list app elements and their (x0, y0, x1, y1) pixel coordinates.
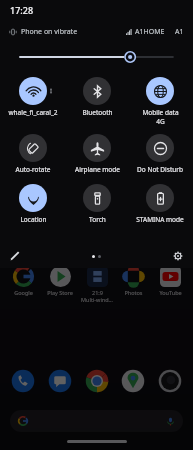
staticText: Torch (89, 215, 106, 224)
staticText: A1 (175, 27, 184, 37)
button[interactable]: Location (2, 183, 64, 225)
button[interactable]: Airplane mode (66, 133, 128, 175)
staticText: Location (20, 215, 47, 224)
staticText: Multi-wind… (81, 296, 113, 303)
staticText: whale_fi_caral_2 (8, 108, 58, 117)
button[interactable]: Camera (157, 368, 183, 394)
staticText: 21:9 (92, 289, 103, 296)
button[interactable]: Messages (47, 368, 73, 394)
staticText: 17:28 (10, 4, 34, 16)
staticText: Bluetooth (82, 108, 113, 117)
button[interactable]: Torch (66, 183, 128, 225)
staticText: STAMINA mode (136, 215, 184, 224)
button[interactable]: Photos (115, 266, 151, 296)
staticText: Airplane mode (75, 165, 120, 174)
staticText: Mobile data (142, 108, 179, 117)
button[interactable]: Mobile data (129, 76, 191, 127)
button[interactable]: Bluetooth (66, 76, 128, 118)
staticText: Do Not Disturb (137, 165, 183, 174)
staticText: Photos (124, 289, 143, 296)
button[interactable]: Maps (120, 368, 146, 394)
button[interactable]: Phone (10, 368, 36, 394)
staticText: 4G (156, 117, 165, 126)
button[interactable]: YouTube (152, 266, 188, 296)
staticText: Auto-rotate (15, 165, 51, 174)
button[interactable]: Brightness (0, 48, 193, 66)
button[interactable]: STAMINA mode (129, 183, 191, 225)
button[interactable]: whale_fi_caral_2 (2, 76, 64, 118)
staticText: YouTube (159, 289, 182, 296)
button[interactable]: Edit tiles (6, 247, 24, 265)
button[interactable]: Google (5, 266, 41, 296)
staticText: Google (14, 289, 33, 296)
button[interactable]: Settings (169, 247, 187, 265)
button[interactable]: Search (10, 410, 183, 432)
button[interactable]: Do Not Disturb (129, 133, 191, 175)
button[interactable]: Chrome (84, 368, 110, 394)
button[interactable]: Play Store (42, 266, 78, 296)
staticText: Phone on vibrate (21, 27, 78, 37)
button[interactable]: Auto-rotate (2, 133, 64, 175)
staticText: A1HOME (135, 27, 165, 37)
button[interactable]: 21:9 (79, 266, 115, 303)
staticText: Play Store (47, 289, 73, 296)
